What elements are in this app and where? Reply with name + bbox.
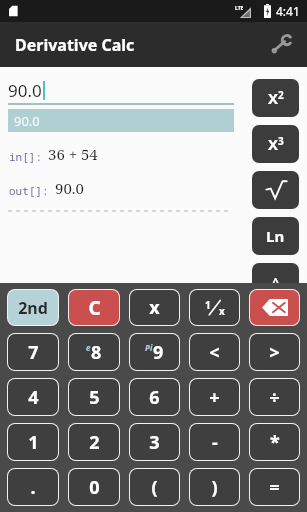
button[interactable]: (	[130, 469, 179, 505]
staticText: 1	[205, 298, 211, 312]
staticText: 4:41	[276, 3, 300, 19]
button[interactable]: One over x	[190, 290, 239, 325]
staticText: LTE	[235, 5, 244, 12]
staticText: .	[30, 475, 36, 500]
button[interactable]: 2	[69, 424, 119, 460]
button[interactable]: 1	[8, 424, 58, 460]
button[interactable]: *	[250, 424, 299, 460]
staticText: in[]:	[9, 149, 42, 164]
staticText: 36 + 54	[48, 144, 98, 164]
button[interactable]: -	[190, 424, 239, 460]
button[interactable]: +	[190, 379, 239, 415]
staticText: =	[269, 475, 280, 500]
button[interactable]: X2	[252, 79, 299, 117]
staticText: >	[269, 340, 280, 365]
button[interactable]: Pi	[130, 334, 179, 370]
staticText: Pi	[145, 342, 153, 353]
button[interactable]: 7	[8, 334, 58, 370]
button[interactable]: ÷	[250, 379, 299, 415]
button[interactable]: 90.0	[8, 109, 234, 132]
button[interactable]: >	[250, 334, 299, 370]
button[interactable]: Backspace	[250, 290, 299, 325]
staticText: 9	[153, 340, 164, 365]
staticText: <	[209, 340, 220, 365]
staticText: Derivative Calc	[15, 34, 135, 56]
staticText: )	[211, 475, 218, 500]
button[interactable]: )	[190, 469, 239, 505]
staticText: out[]:	[9, 183, 49, 198]
staticText: C	[88, 295, 101, 321]
staticText: (	[151, 475, 158, 500]
staticText: 2	[89, 430, 100, 455]
staticText: X2	[268, 88, 284, 108]
staticText: 90.0	[8, 79, 42, 102]
staticText: 0	[89, 475, 100, 500]
button[interactable]: ^	[252, 263, 299, 301]
staticText: 90.0	[14, 112, 40, 130]
staticText: *	[270, 430, 280, 455]
staticText: e	[86, 342, 91, 353]
button[interactable]: Settings	[265, 28, 299, 62]
staticText: 5	[89, 385, 100, 410]
staticText: 3	[149, 430, 160, 455]
staticText: 2nd	[18, 297, 48, 319]
button[interactable]: 3	[130, 424, 179, 460]
button[interactable]: 4	[8, 379, 58, 415]
staticText: 90.0	[55, 178, 84, 198]
button[interactable]: C	[69, 290, 119, 325]
staticText: ÷	[269, 385, 280, 410]
button[interactable]	[252, 171, 299, 209]
staticText: +	[209, 385, 220, 410]
staticText: x	[149, 295, 160, 320]
button[interactable]: .	[8, 469, 58, 505]
staticText: 1	[28, 430, 39, 455]
button[interactable]: 2nd	[8, 290, 58, 325]
button[interactable]: X3	[252, 125, 299, 163]
button[interactable]: e	[69, 334, 119, 370]
staticText: x	[219, 304, 225, 318]
button[interactable]: <	[190, 334, 239, 370]
button[interactable]: 6	[130, 379, 179, 415]
staticText: 7	[28, 340, 39, 365]
button[interactable]: x	[130, 290, 179, 325]
staticText: 8	[91, 340, 102, 365]
button[interactable]: =	[250, 469, 299, 505]
staticText: 4	[28, 385, 39, 410]
staticText: -	[212, 430, 218, 455]
staticText: X3	[268, 134, 284, 154]
button[interactable]: 0	[69, 469, 119, 505]
staticText: Ln	[266, 226, 285, 246]
staticText: 6	[149, 385, 160, 410]
button[interactable]: 5	[69, 379, 119, 415]
staticText: ^	[272, 273, 280, 291]
button[interactable]: Ln	[252, 217, 299, 255]
